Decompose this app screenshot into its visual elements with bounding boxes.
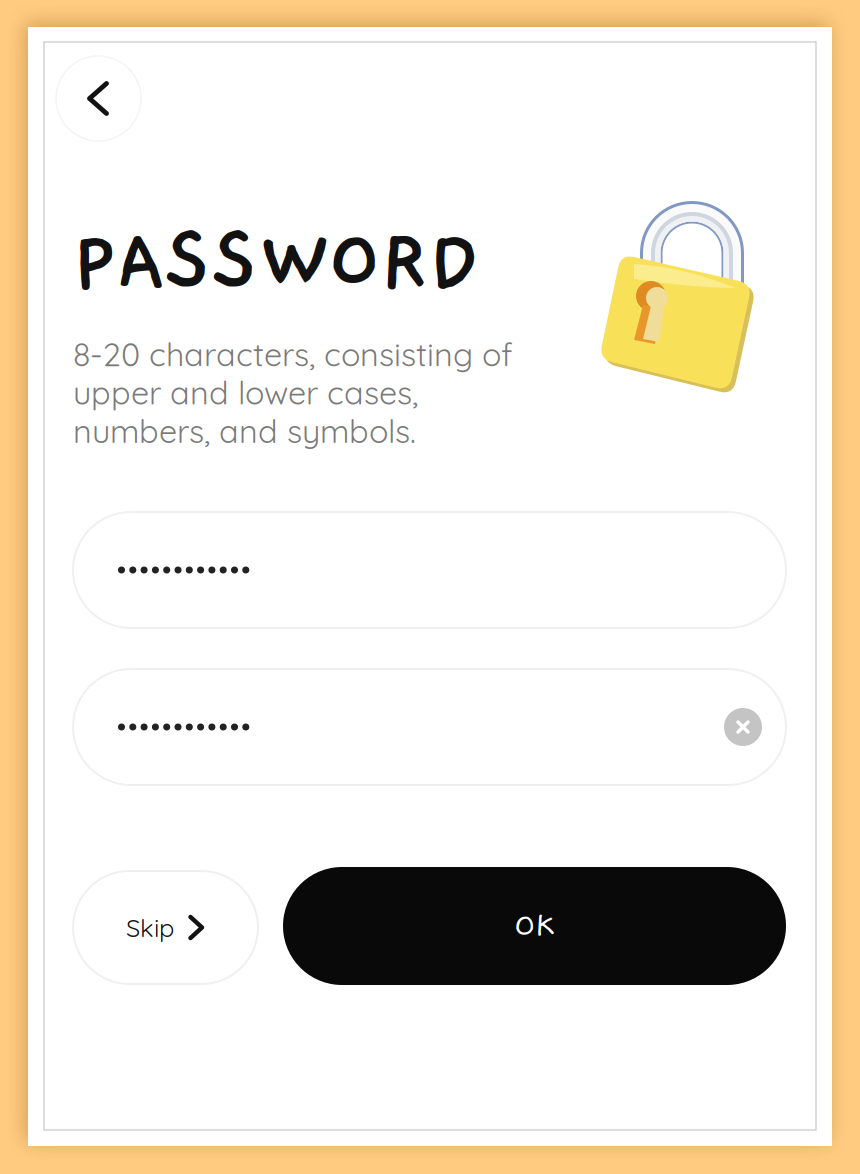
- staticText: PASSWORD: [72, 215, 480, 307]
- button[interactable]: Back: [56, 56, 141, 141]
- staticText: Skip: [126, 912, 174, 943]
- button[interactable]: Skip: [73, 871, 258, 984]
- staticText: 8-20 characters, consisting of upper and…: [73, 334, 513, 451]
- button[interactable]: OK: [283, 867, 786, 985]
- staticText: OK: [514, 907, 555, 945]
